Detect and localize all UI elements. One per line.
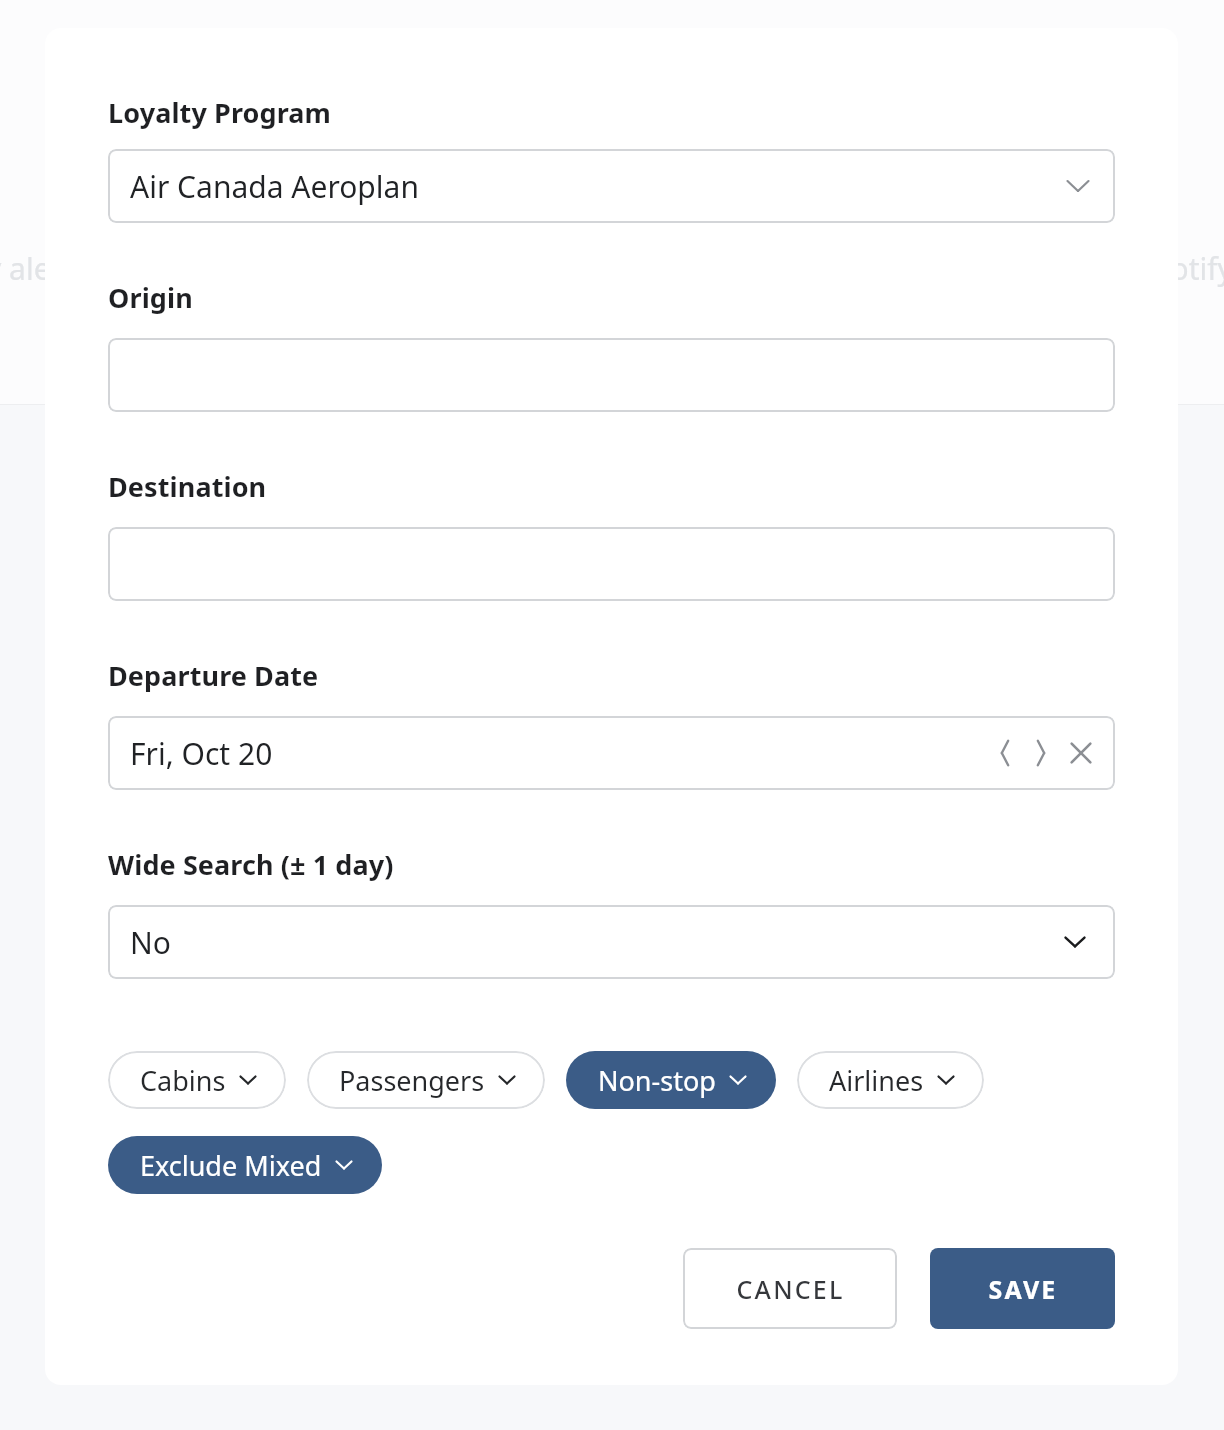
button[interactable]: Airlines <box>797 1051 984 1109</box>
button[interactable]: Passengers <box>307 1051 545 1109</box>
button[interactable]: Cabins <box>108 1051 286 1109</box>
staticText: Destination <box>108 468 267 505</box>
button[interactable]: No <box>108 905 1115 979</box>
staticText: Origin <box>108 279 193 316</box>
button[interactable] <box>108 338 1115 412</box>
staticText: Loyalty Program <box>108 94 331 131</box>
staticText: Airlines <box>829 1062 924 1099</box>
staticText: notify <box>1152 248 1224 289</box>
button[interactable]: Clear date <box>1063 735 1099 771</box>
button[interactable]: Exclude Mixed <box>108 1136 382 1194</box>
button[interactable]: Next day <box>1023 735 1059 771</box>
staticText: Passengers <box>339 1062 485 1099</box>
staticText: Fri, Oct 20 <box>130 733 987 774</box>
staticText: Non-stop <box>598 1062 716 1099</box>
staticText: Exclude Mixed <box>140 1147 322 1184</box>
staticText: CANCEL <box>736 1272 845 1306</box>
staticText: Wide Search (± 1 day) <box>108 846 394 883</box>
staticText: No <box>130 922 1061 963</box>
staticText: Cabins <box>140 1062 226 1099</box>
staticText: Departure Date <box>108 657 319 694</box>
button[interactable]: Air Canada Aeroplan <box>108 149 1115 223</box>
button[interactable]: Non-stop <box>566 1051 776 1109</box>
staticText: SAVE <box>988 1272 1058 1306</box>
staticText: Air Canada Aeroplan <box>130 166 1063 207</box>
button[interactable]: Fri, Oct 20 <box>108 716 1115 790</box>
button[interactable]: SAVE <box>930 1248 1115 1329</box>
button[interactable]: CANCEL <box>683 1248 897 1329</box>
button[interactable]: Previous day <box>987 735 1023 771</box>
button[interactable] <box>108 527 1115 601</box>
staticText: y ale <box>0 248 51 289</box>
